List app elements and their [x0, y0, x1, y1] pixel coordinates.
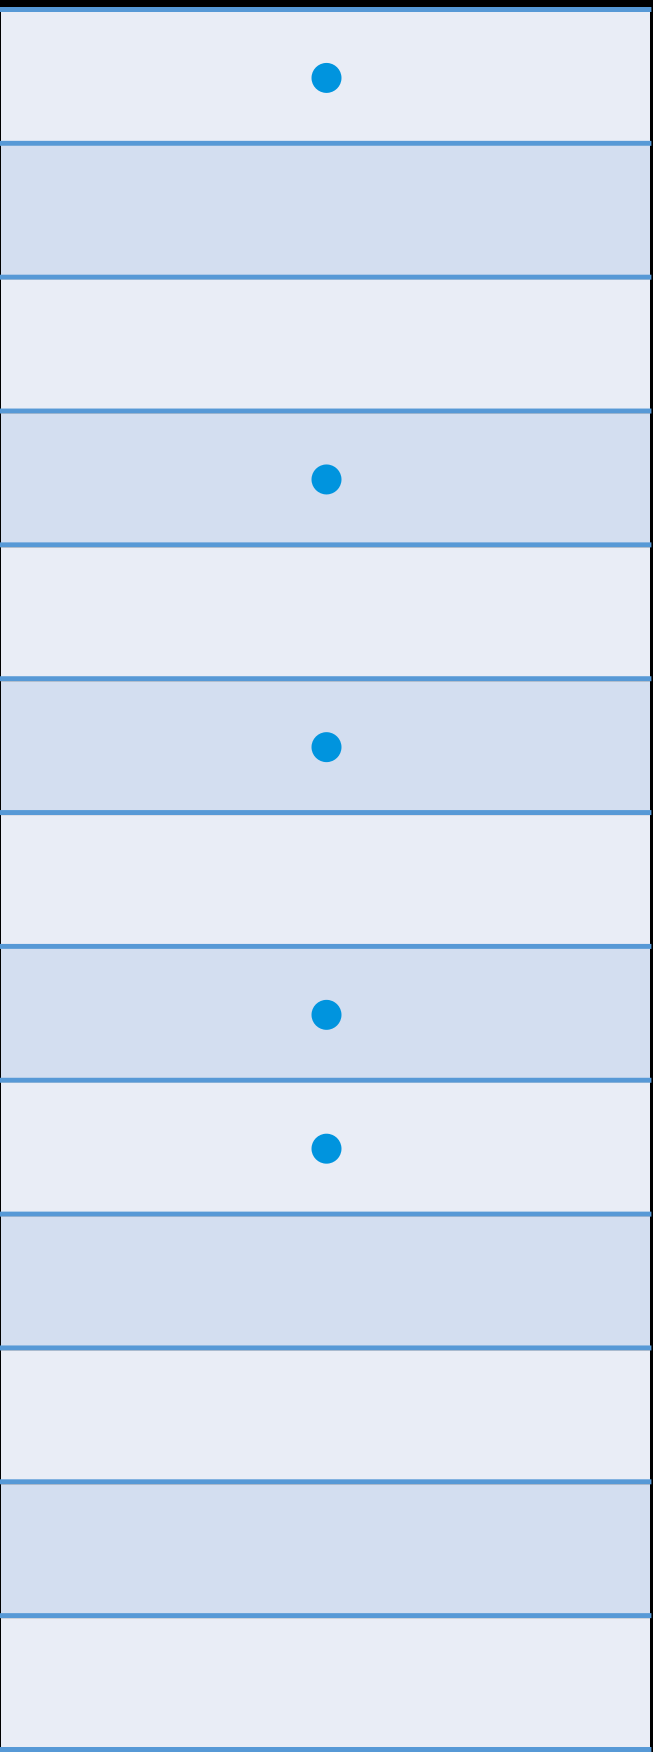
button[interactable]: Item [0, 280, 653, 413]
button[interactable]: Item [0, 547, 653, 681]
button[interactable]: Selected item [0, 1083, 653, 1217]
button[interactable]: Item [0, 1618, 653, 1752]
button[interactable]: Item [0, 1350, 653, 1484]
button[interactable]: Item [0, 815, 653, 949]
button[interactable]: Item [0, 146, 653, 280]
button[interactable]: Selected item [0, 681, 653, 815]
button[interactable]: Selected item [0, 12, 653, 146]
button[interactable]: Selected item [0, 949, 653, 1083]
button[interactable]: Item [0, 1484, 653, 1618]
button[interactable]: Item [0, 1217, 653, 1350]
button[interactable]: Selected item [0, 413, 653, 547]
